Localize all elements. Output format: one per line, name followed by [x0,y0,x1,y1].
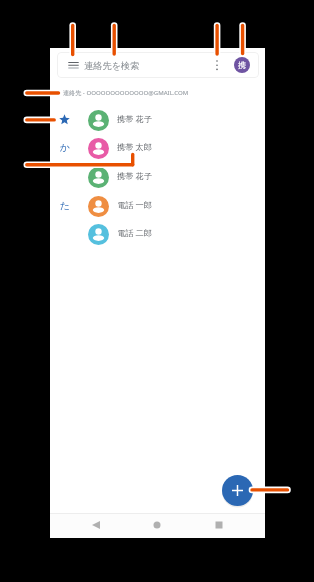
button[interactable]: Home [151,519,163,531]
staticText: 携 [238,60,246,70]
button[interactable]: Open navigation drawer [57,52,259,78]
button[interactable]: Back [92,519,104,531]
button[interactable]: 携帯 花子 [50,106,265,135]
staticText: 連絡先 - OOOOOOOOOOOOO@GMAIL.COM [63,88,189,96]
staticText: 携帯 花子 [117,170,152,181]
staticText: 電話 二郎 [117,227,152,238]
button[interactable]: 携帯 花子 [50,163,265,192]
staticText: 携帯 太郎 [117,141,152,152]
button[interactable]: か [50,134,265,163]
button[interactable]: た [50,192,265,221]
staticText: か [60,141,71,153]
button[interactable]: Create contact [222,475,253,506]
staticText: 連絡先を検索 [84,60,140,72]
button[interactable]: 電話 二郎 [50,220,265,249]
button[interactable]: More options [211,60,223,71]
button[interactable]: Recent apps [213,519,225,531]
staticText: 携帯 花子 [117,113,152,124]
staticText: た [60,199,71,211]
button[interactable]: Open navigation drawer [68,62,79,69]
staticText: 電話 一郎 [117,199,152,210]
button[interactable]: Account [234,57,250,73]
